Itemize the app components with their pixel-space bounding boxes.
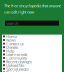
button[interactable]: Contact us: [3, 42, 62, 45]
button[interactable]: Donate: [3, 45, 62, 49]
staticText: search: [6, 20, 18, 26]
button[interactable]: Learn to edit: [3, 53, 62, 56]
button[interactable]: Home: [3, 35, 62, 38]
staticText: Donate: [6, 45, 18, 50]
staticText: Printable version: [6, 70, 35, 72]
staticText: News: [6, 37, 16, 43]
staticText: Recent changes: [6, 59, 32, 64]
staticText: Upload file: [6, 63, 24, 68]
button[interactable]: Upload file: [3, 63, 62, 67]
button[interactable]: Recent changes: [3, 60, 62, 63]
staticText: Special pages: [6, 66, 29, 71]
staticText: can edit right now: [4, 9, 34, 15]
staticText: Community: [6, 55, 27, 61]
staticText: Learn to edit: [6, 52, 27, 57]
button[interactable]: Special pages: [3, 67, 62, 71]
button[interactable]: Printable version: [3, 71, 62, 72]
button[interactable]: News: [3, 38, 62, 42]
staticText: Contact us: [6, 41, 24, 46]
staticText: The free encyclopedia that anyone: [4, 3, 61, 8]
button[interactable]: Help: [3, 49, 62, 53]
button[interactable]: Community: [3, 56, 62, 60]
staticText: Home: [6, 34, 17, 39]
staticText: Help: [6, 48, 14, 53]
